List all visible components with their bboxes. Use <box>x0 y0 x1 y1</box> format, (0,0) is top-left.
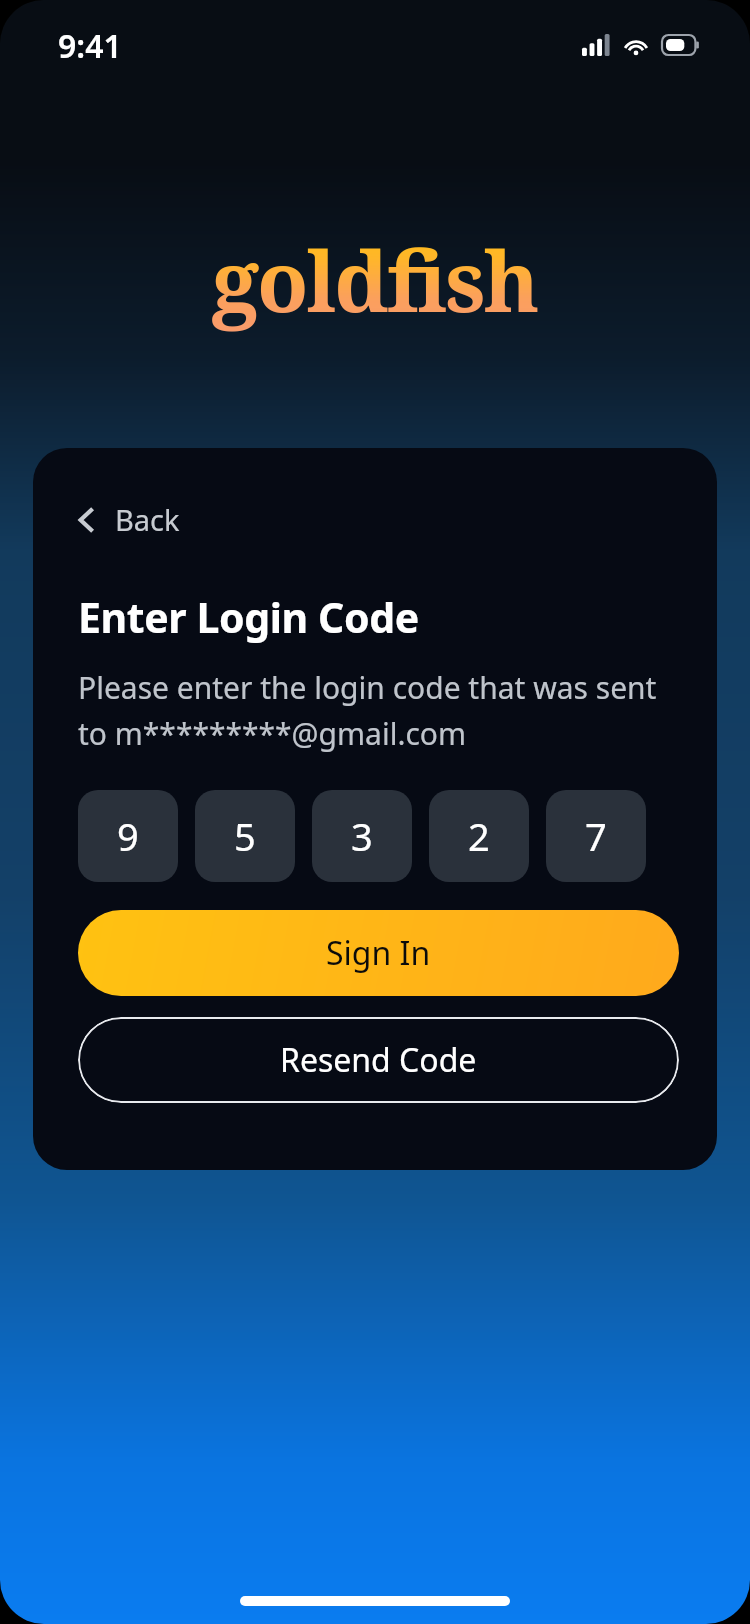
staticText: Sign In <box>326 931 431 975</box>
staticText: Resend Code <box>280 1038 477 1082</box>
button[interactable]: 3 <box>312 790 412 882</box>
button[interactable]: 9 <box>78 790 178 882</box>
staticText: 5 <box>234 810 256 862</box>
button[interactable]: Resend Code <box>78 1017 679 1103</box>
staticText: goldfish <box>212 222 538 336</box>
button[interactable]: 2 <box>429 790 529 882</box>
staticText: 9 <box>117 810 139 862</box>
button[interactable]: Back <box>67 492 190 547</box>
staticText: Enter Login Code <box>78 589 419 645</box>
staticText: 2 <box>468 810 490 862</box>
staticText: 3 <box>351 810 373 862</box>
staticText: 7 <box>585 810 607 862</box>
staticText: 9:41 <box>58 24 122 68</box>
staticText: Back <box>115 500 180 539</box>
staticText: Please enter the login code that was sen… <box>78 667 679 754</box>
button[interactable]: 7 <box>546 790 646 882</box>
button[interactable]: Sign In <box>78 910 679 996</box>
button[interactable]: 5 <box>195 790 295 882</box>
